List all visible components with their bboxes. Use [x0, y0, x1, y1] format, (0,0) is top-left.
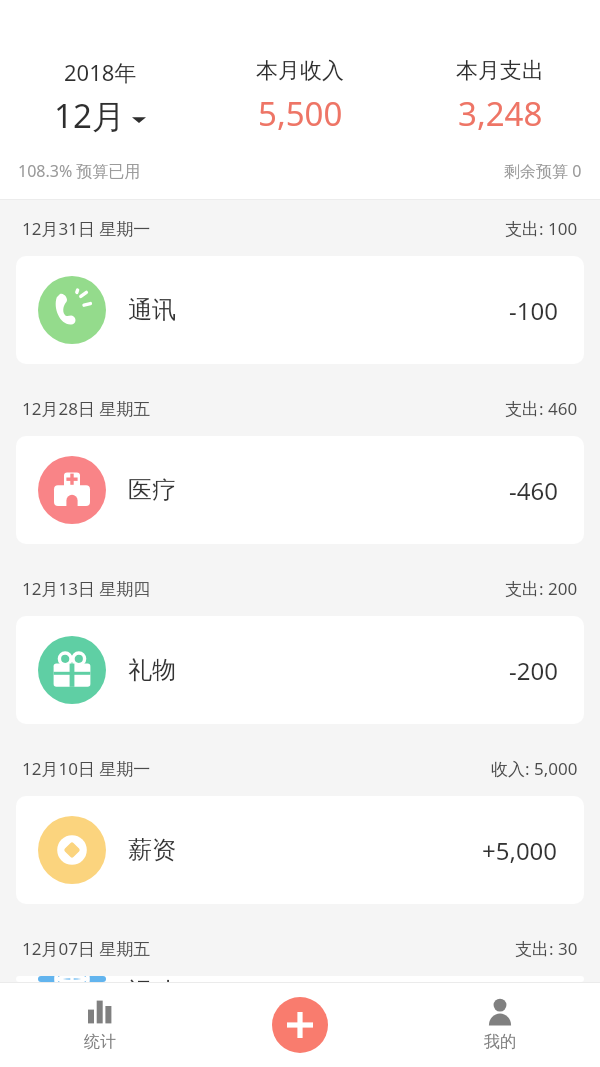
staticText: -100 — [509, 294, 558, 327]
button[interactable]: 我的 — [484, 997, 516, 1052]
staticText: 收入: 5,000 — [491, 757, 578, 780]
staticText: 支出: 200 — [505, 577, 578, 600]
button[interactable]: 礼物 — [16, 616, 584, 724]
staticText: 12月 — [54, 93, 125, 138]
staticText: 统计 — [84, 1032, 116, 1052]
staticText: 12月31日 星期一 — [22, 217, 151, 240]
button[interactable]: 运动 — [16, 976, 584, 982]
staticText: 薪资 — [128, 835, 176, 865]
staticText: 礼物 — [128, 655, 176, 685]
staticText: 2018年 — [64, 57, 137, 87]
button[interactable]: Add transaction — [272, 997, 328, 1053]
staticText: 剩余预算 0 — [504, 160, 582, 182]
staticText: -460 — [509, 474, 558, 507]
button[interactable]: 医疗 — [16, 436, 584, 544]
button[interactable]: 2018年 — [0, 0, 200, 138]
staticText: 支出: 100 — [505, 217, 578, 240]
staticText: 12月28日 星期五 — [22, 397, 151, 420]
button[interactable]: 薪资 — [16, 796, 584, 904]
staticText: 12月07日 星期五 — [22, 937, 151, 960]
staticText: 通讯 — [128, 295, 176, 325]
staticText: +5,000 — [482, 834, 558, 867]
staticText: 5,500 — [258, 91, 343, 136]
button[interactable]: 统计 — [84, 997, 116, 1052]
staticText: 我的 — [484, 1032, 516, 1052]
staticText: 12月10日 星期一 — [22, 757, 151, 780]
staticText: 医疗 — [128, 475, 176, 505]
staticText: 运动 — [128, 976, 176, 982]
staticText: -200 — [509, 654, 558, 687]
staticText: 本月收入 — [256, 57, 344, 85]
staticText: 支出: 30 — [515, 937, 578, 960]
staticText: 12月13日 星期四 — [22, 577, 151, 600]
staticText: 3,248 — [458, 91, 543, 136]
staticText: 本月支出 — [456, 57, 544, 85]
button[interactable]: 通讯 — [16, 256, 584, 364]
staticText: 108.3% 预算已用 — [18, 160, 141, 182]
staticText: 支出: 460 — [505, 397, 578, 420]
